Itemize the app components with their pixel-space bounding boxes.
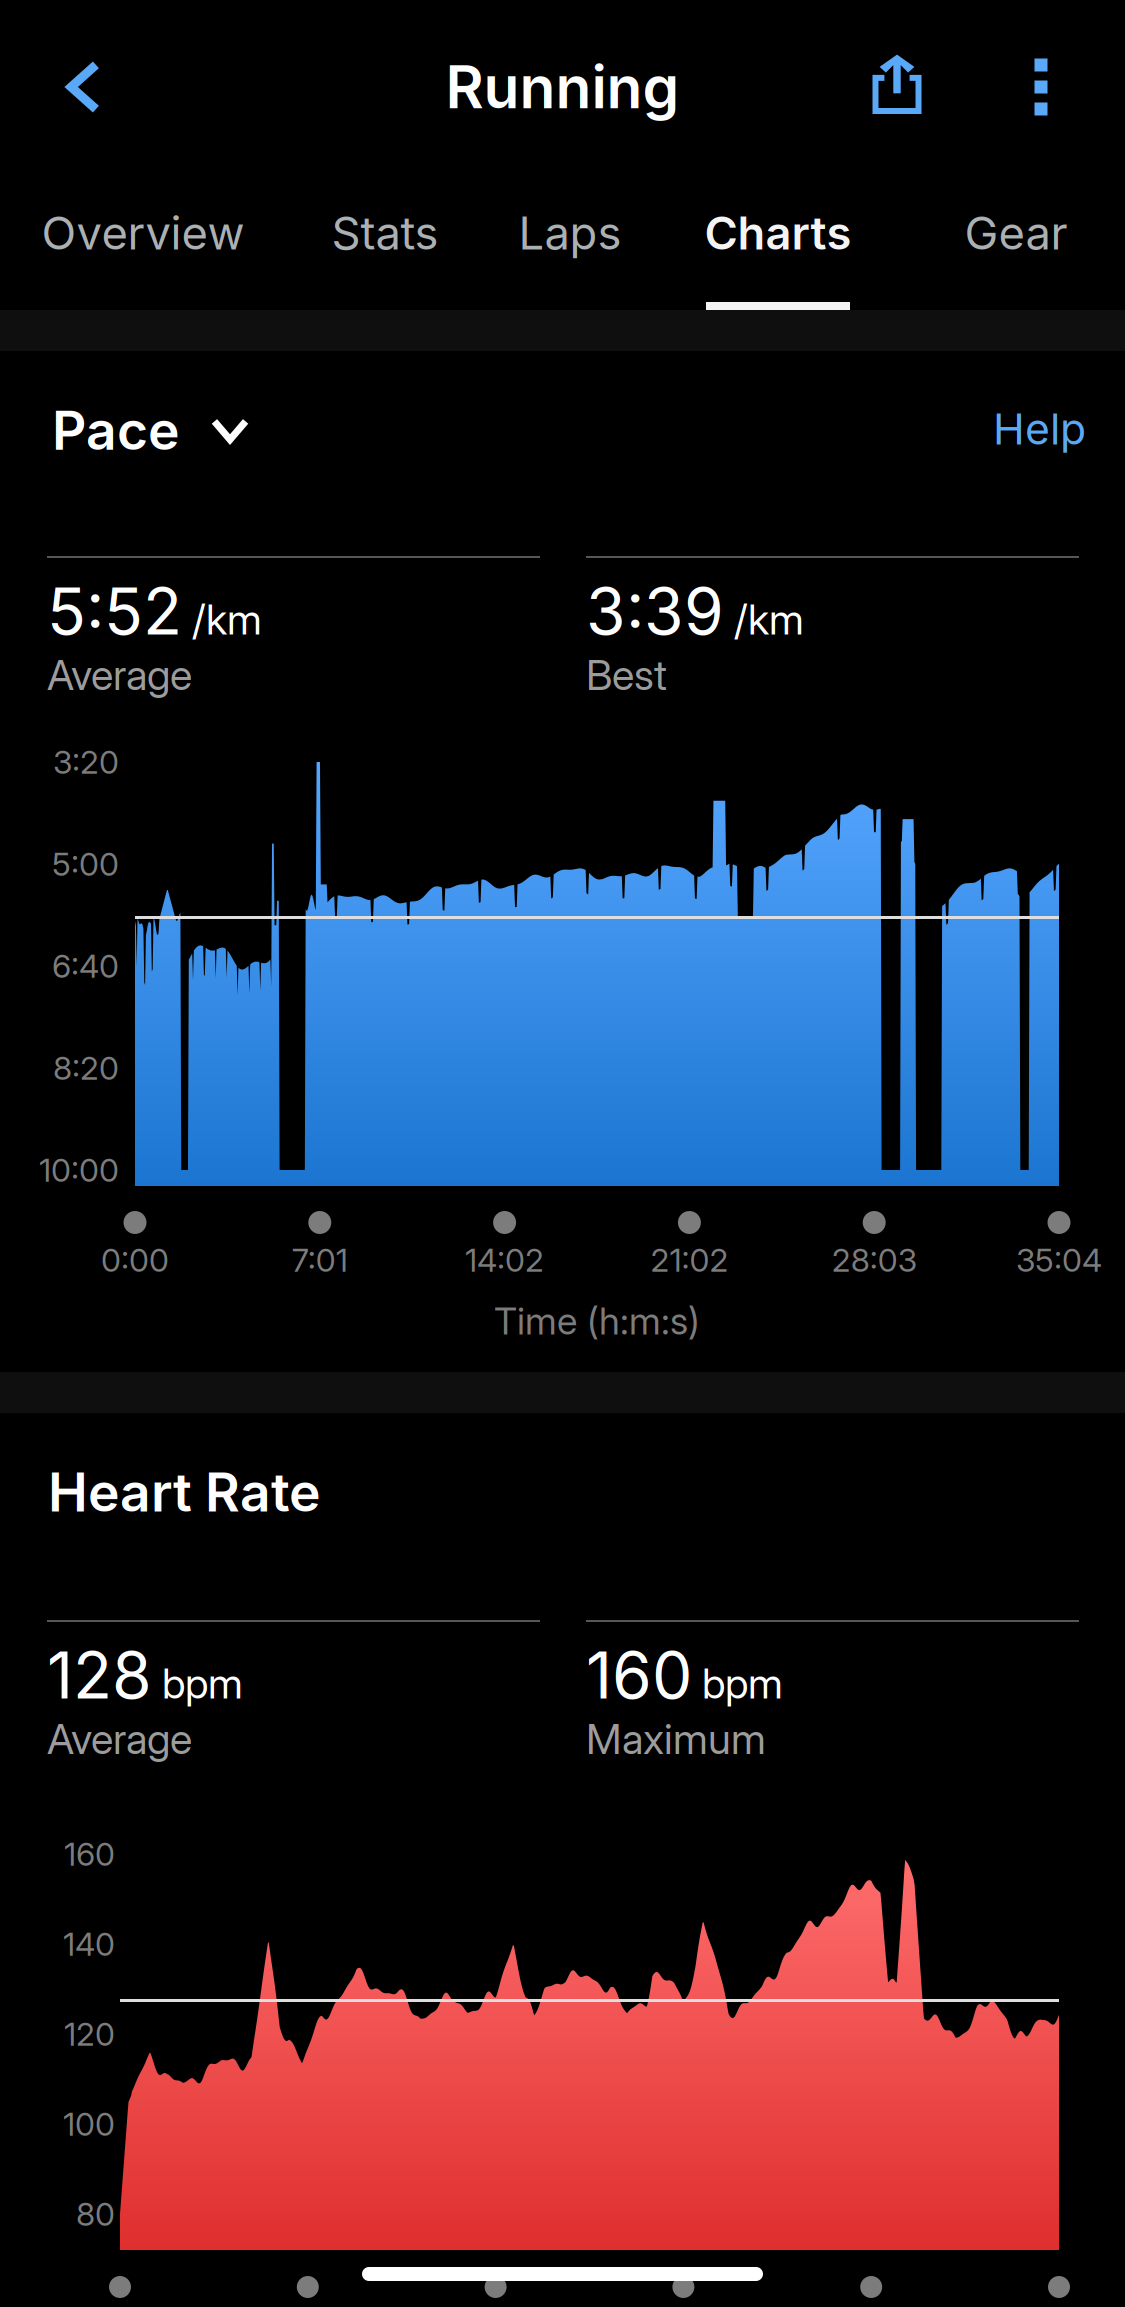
staticText: 7:01 — [292, 1241, 348, 1279]
staticText: 120 — [64, 2015, 115, 2053]
staticText: 80 — [76, 2195, 115, 2233]
staticText: 5:52 — [47, 573, 182, 650]
staticText: bpm — [162, 1658, 243, 1708]
button[interactable]: Charts — [686, 188, 870, 312]
staticText: 21:02 — [650, 1241, 728, 1279]
button[interactable]: Laps — [501, 188, 639, 312]
staticText: 5:00 — [52, 845, 119, 883]
staticText: bpm — [702, 1658, 783, 1708]
staticText: Heart Rate — [48, 1460, 321, 1524]
staticText: 140 — [63, 1925, 115, 1963]
staticText: 14:02 — [465, 1241, 544, 1279]
staticText: 0:00 — [101, 1241, 169, 1279]
staticText: Time (h:m:s) — [494, 1298, 700, 1344]
staticText: 100 — [63, 2105, 115, 2143]
button[interactable]: Pace — [36, 370, 265, 490]
staticText: /km — [734, 594, 804, 644]
button[interactable]: More options — [985, 31, 1097, 143]
staticText: Gear — [964, 206, 1067, 260]
staticText: Pace — [52, 398, 180, 462]
staticText: /km — [192, 594, 262, 644]
staticText: Running — [445, 51, 679, 122]
button[interactable]: Back — [28, 31, 140, 143]
staticText: Best — [586, 650, 667, 700]
staticText: Charts — [704, 206, 851, 260]
staticText: 160 — [586, 1637, 692, 1714]
button[interactable]: Gear — [945, 188, 1086, 312]
staticText: 160 — [64, 1835, 115, 1873]
staticText: 3:20 — [53, 743, 119, 781]
staticText: Laps — [518, 206, 621, 260]
staticText: Help — [993, 403, 1086, 455]
button[interactable]: Share — [841, 28, 953, 140]
button[interactable]: Stats — [313, 188, 457, 312]
staticText: 35:04 — [1016, 1241, 1102, 1279]
staticText: Overview — [41, 206, 244, 260]
staticText: 10:00 — [39, 1151, 119, 1189]
staticText: Maximum — [586, 1714, 766, 1764]
staticText: 8:20 — [53, 1049, 119, 1087]
staticText: Average — [47, 650, 192, 700]
staticText: 28:03 — [832, 1241, 917, 1279]
button[interactable]: Help — [948, 379, 1104, 479]
button[interactable]: Overview — [23, 188, 263, 312]
staticText: Stats — [331, 206, 438, 260]
staticText: Average — [47, 1714, 192, 1764]
staticText: 6:40 — [52, 947, 119, 985]
staticText: 3:39 — [586, 573, 724, 650]
staticText: 128 — [47, 1637, 152, 1714]
